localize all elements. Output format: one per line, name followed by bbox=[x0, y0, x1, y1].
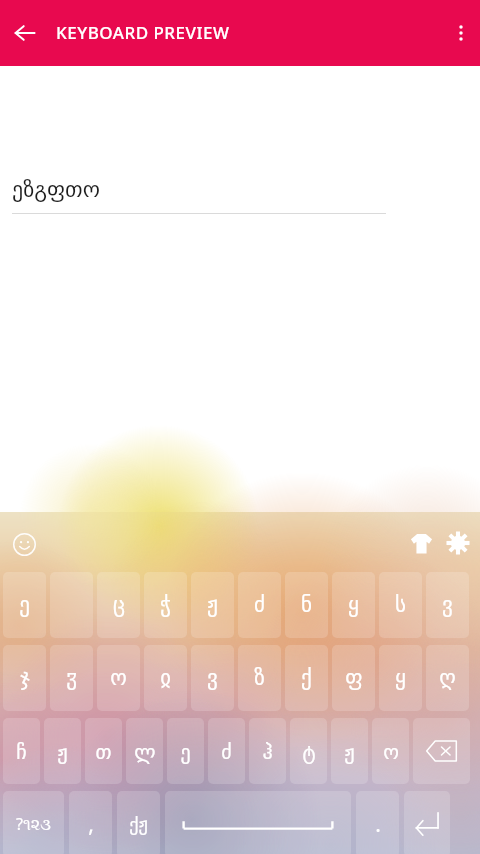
button[interactable]: ე bbox=[167, 718, 204, 784]
button[interactable]: ო bbox=[372, 718, 409, 784]
button[interactable]: ფ bbox=[332, 645, 375, 711]
staticText: ყ bbox=[348, 593, 359, 617]
button[interactable]: Settings bbox=[441, 526, 475, 560]
button[interactable]: Backspace bbox=[413, 718, 470, 784]
staticText: ო bbox=[110, 666, 127, 690]
staticText: ღ bbox=[439, 666, 456, 690]
staticText: . bbox=[375, 810, 381, 839]
staticText: KEYBOARD PREVIEW bbox=[56, 21, 230, 44]
button[interactable]: , bbox=[69, 791, 112, 854]
staticText: ჟ bbox=[344, 740, 355, 763]
staticText: ტ bbox=[302, 740, 316, 763]
button[interactable]: Emoji bbox=[8, 528, 41, 561]
button[interactable]: ჟ bbox=[44, 718, 81, 784]
staticText: ჭ bbox=[160, 593, 171, 617]
button[interactable]: ჩ bbox=[3, 718, 40, 784]
staticText: ჟ bbox=[207, 593, 218, 617]
staticText: ჯ bbox=[20, 666, 30, 690]
button[interactable]: ტ bbox=[290, 718, 327, 784]
staticText: ?૧૨૩ bbox=[16, 813, 51, 835]
button[interactable]: ?૧૨૩ bbox=[3, 791, 64, 854]
button[interactable]: ჲ bbox=[144, 645, 187, 711]
button[interactable]: ვ bbox=[191, 645, 234, 711]
staticText: ზ bbox=[254, 666, 265, 690]
staticText: ო bbox=[383, 740, 399, 763]
staticText: ძ bbox=[221, 740, 232, 763]
staticText: ძ bbox=[254, 593, 265, 617]
button[interactable]: ზ bbox=[238, 645, 281, 711]
button[interactable]: Enter bbox=[404, 791, 450, 854]
staticText: ეზგფთო bbox=[12, 177, 101, 203]
button[interactable]: ღ bbox=[426, 645, 469, 711]
button[interactable]: ს bbox=[379, 572, 422, 638]
staticText: , bbox=[88, 810, 94, 839]
staticText: ლ bbox=[134, 740, 156, 763]
staticText: ფ bbox=[345, 666, 363, 690]
button[interactable]: Theme bbox=[404, 526, 438, 560]
staticText: თ bbox=[95, 740, 112, 763]
button[interactable]: ო bbox=[97, 645, 140, 711]
button[interactable]: ნ bbox=[285, 572, 328, 638]
button[interactable]: ჰ bbox=[249, 718, 286, 784]
staticText: ე bbox=[19, 593, 30, 617]
button[interactable]: ლ bbox=[126, 718, 163, 784]
staticText: ჰ bbox=[262, 740, 273, 763]
button[interactable]: ჯ bbox=[3, 645, 46, 711]
button[interactable]: ც bbox=[97, 572, 140, 638]
button[interactable]: ჳ bbox=[50, 645, 93, 711]
button[interactable]: ყ bbox=[379, 645, 422, 711]
button[interactable]: ძ bbox=[238, 572, 281, 638]
staticText: ე bbox=[180, 740, 191, 763]
staticText: ვ bbox=[442, 593, 453, 617]
staticText: ქჟ bbox=[129, 814, 148, 835]
staticText: ყ bbox=[395, 666, 406, 690]
button[interactable]: More options bbox=[444, 16, 477, 49]
staticText: ქ bbox=[301, 666, 312, 690]
button[interactable]: ვ bbox=[426, 572, 469, 638]
button[interactable]: თ bbox=[85, 718, 122, 784]
button[interactable]: ჟ bbox=[191, 572, 234, 638]
button[interactable]: Space bbox=[165, 791, 351, 854]
staticText: ვ bbox=[207, 666, 218, 690]
button[interactable]: ჈ bbox=[50, 572, 93, 638]
button[interactable]: . bbox=[356, 791, 399, 854]
staticText: ს bbox=[395, 593, 406, 617]
button[interactable]: ქჟ bbox=[117, 791, 160, 854]
staticText: ჲ bbox=[160, 666, 171, 690]
button[interactable]: Back bbox=[9, 17, 40, 48]
staticText: ჟ bbox=[57, 740, 68, 763]
button[interactable]: ქ bbox=[285, 645, 328, 711]
button[interactable]: ძ bbox=[208, 718, 245, 784]
button[interactable]: ჟ bbox=[331, 718, 368, 784]
staticText: ც bbox=[113, 593, 125, 617]
staticText: ჩ bbox=[16, 740, 27, 763]
staticText: ნ bbox=[301, 593, 312, 617]
staticText: ჳ bbox=[66, 666, 77, 690]
button[interactable]: ჭ bbox=[144, 572, 187, 638]
button[interactable]: ე bbox=[3, 572, 46, 638]
button[interactable]: ყ bbox=[332, 572, 375, 638]
